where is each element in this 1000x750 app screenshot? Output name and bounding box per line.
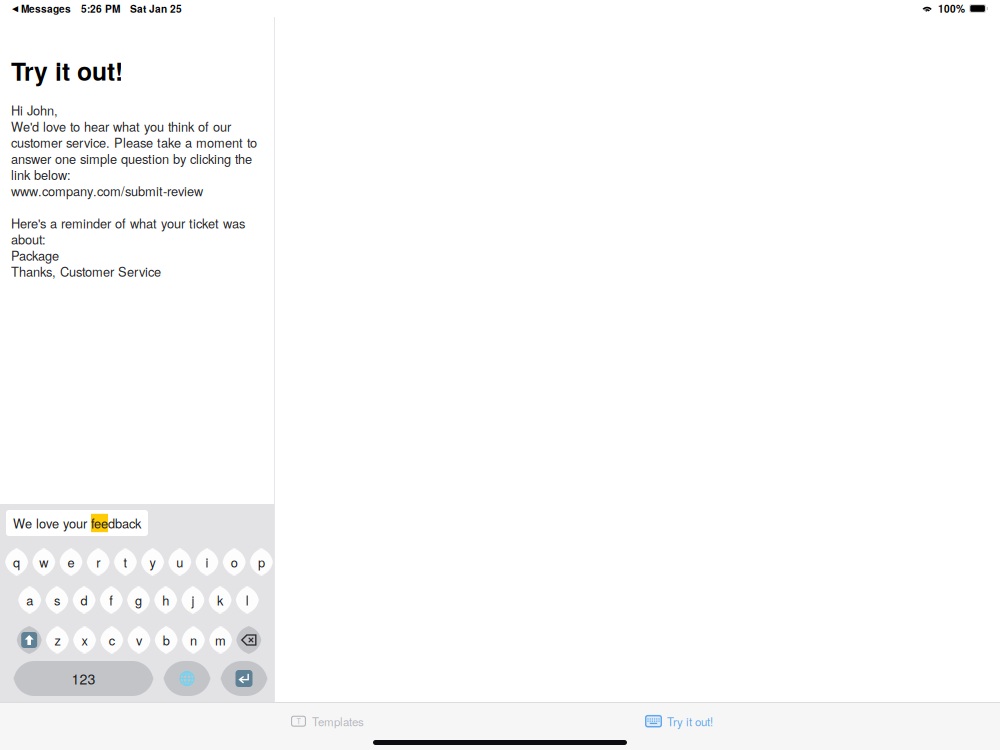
staticText: c [109,631,115,649]
staticText: Here's a reminder of what your ticket wa… [11,214,245,232]
button[interactable]: k [209,586,232,614]
staticText: fee [91,514,108,532]
staticText: Templates [312,713,364,729]
staticText: n [190,631,197,649]
staticText: Sat Jan 25 [130,1,182,16]
staticText: q [13,553,20,571]
staticText: dback [108,514,141,532]
staticText: 123 [71,668,95,689]
button[interactable]: T [283,708,372,734]
button[interactable]: r [87,548,110,576]
staticText: Hi John, [11,101,58,119]
staticText: link below: [11,165,71,184]
staticText: t [123,553,127,571]
staticText: Try it out! [667,713,713,729]
button[interactable]: z [46,626,69,654]
button[interactable]: 123 [13,661,153,696]
staticText: www.company.com/submit-review [11,181,203,200]
staticText: g [135,591,142,609]
staticText: i [205,553,208,571]
button[interactable]: a [18,586,41,614]
staticText: a [26,591,33,609]
staticText: x [82,631,88,649]
staticText: Package [11,246,59,264]
button[interactable]: n [182,626,205,654]
button[interactable]: e [59,548,82,576]
staticText: T [296,716,300,726]
staticText: Messages [21,1,71,16]
button[interactable]: Return [220,661,267,696]
staticText: 100% [938,1,965,16]
button[interactable]: Shift [17,626,42,654]
button[interactable]: f [100,586,123,614]
button[interactable]: Switch keyboard [163,661,210,696]
staticText: 5:26 PM [81,1,120,16]
button[interactable]: g [127,586,150,614]
button[interactable]: x [73,626,96,654]
staticText: u [176,553,183,571]
button[interactable]: Delete [236,626,261,654]
staticText: Thanks, Customer Service [11,262,161,280]
staticText: j [191,591,194,609]
staticText: about: [11,230,46,248]
staticText: ◀ [12,4,18,13]
staticText: h [162,591,169,609]
staticText: p [258,553,265,571]
staticText: l [246,591,249,609]
staticText: y [150,553,156,571]
button[interactable]: c [100,626,123,654]
staticText: We love your [13,514,91,532]
button[interactable]: w [32,548,55,576]
staticText: k [217,591,223,609]
button[interactable]: s [45,586,68,614]
button[interactable]: y [141,548,164,576]
staticText: We'd love to hear what you think of our [11,117,231,135]
button[interactable]: q [5,548,28,576]
staticText: s [54,591,60,609]
staticText: b [163,631,170,649]
staticText: o [231,553,238,571]
button[interactable]: p [250,548,273,576]
button[interactable]: d [73,586,96,614]
button[interactable]: Try it out! [637,708,721,734]
staticText: e [67,553,74,571]
staticText: r [96,553,100,571]
staticText: w [39,553,48,571]
staticText: v [136,631,142,649]
staticText: d [81,591,88,609]
button[interactable]: We love your [6,510,148,536]
staticText: customer service. Please take a moment t… [11,133,257,151]
button[interactable]: j [181,586,204,614]
button[interactable]: i [195,548,218,576]
button[interactable]: ◀ [12,1,71,16]
staticText: f [109,591,113,609]
button[interactable]: h [154,586,177,614]
staticText: m [215,631,226,649]
staticText: Try it out! [11,53,123,88]
staticText: answer one simple question by clicking t… [11,149,252,167]
button[interactable]: t [114,548,137,576]
button[interactable]: l [236,586,259,614]
button[interactable]: u [168,548,191,576]
button[interactable]: m [209,626,232,654]
button[interactable]: v [127,626,150,654]
staticText: z [54,631,60,649]
button[interactable]: o [223,548,246,576]
button[interactable]: b [155,626,178,654]
